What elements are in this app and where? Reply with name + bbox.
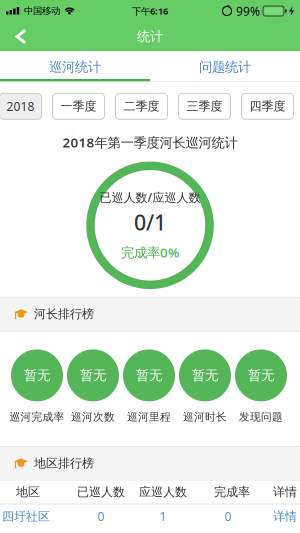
staticText: 1 xyxy=(159,508,166,524)
staticText: 暂无 xyxy=(136,367,162,384)
staticText: 完成率0% xyxy=(121,243,179,261)
staticText: 暂无 xyxy=(80,367,106,384)
staticText: 已巡人数/应巡人数 xyxy=(99,189,200,205)
staticText: 二季度 xyxy=(123,99,159,114)
staticText: 详情 xyxy=(273,509,297,524)
button[interactable]: Back xyxy=(0,23,27,50)
button[interactable]: 二季度 xyxy=(115,93,167,119)
button[interactable]: 2018 xyxy=(0,93,41,119)
staticText: 0 xyxy=(224,508,231,524)
staticText: 中国移动 xyxy=(24,5,60,17)
staticText: 河长排行榜 xyxy=(34,307,94,321)
staticText: 2018年第一季度河长巡河统计 xyxy=(62,133,237,151)
button[interactable]: 三季度 xyxy=(178,93,230,119)
staticText: 地区排行榜 xyxy=(34,456,94,471)
staticText: 统计 xyxy=(137,28,163,45)
staticText: 暂无 xyxy=(248,367,274,384)
staticText: 已巡人数 xyxy=(77,485,125,499)
staticText: 2018 xyxy=(6,98,34,114)
staticText: 巡河次数 xyxy=(71,410,115,423)
staticText: 暂无 xyxy=(192,367,218,384)
staticText: 四季度 xyxy=(249,99,285,114)
staticText: 99% xyxy=(236,3,260,19)
staticText: 四圩社区 xyxy=(2,509,50,524)
staticText: 三季度 xyxy=(186,99,222,114)
staticText: 一季度 xyxy=(60,99,96,114)
button[interactable]: 一季度 xyxy=(52,93,104,119)
staticText: 巡河时长 xyxy=(183,410,227,423)
staticText: 0 xyxy=(97,508,104,524)
staticText: 巡河完成率 xyxy=(9,410,64,423)
staticText: 巡河里程 xyxy=(127,410,171,423)
staticText: 应巡人数 xyxy=(139,485,187,499)
staticText: 0/1 xyxy=(134,208,166,236)
staticText: 地区 xyxy=(16,485,40,499)
staticText: 完成率 xyxy=(214,485,250,499)
button[interactable]: 四季度 xyxy=(241,93,293,119)
staticText: 下午6:16 xyxy=(132,5,168,17)
staticText: 详情 xyxy=(273,485,297,499)
button[interactable]: 问题统计 xyxy=(150,51,300,79)
staticText: 暂无 xyxy=(24,367,50,384)
staticText: 问题统计 xyxy=(199,59,251,75)
staticText: 发现问题 xyxy=(239,410,283,423)
button[interactable]: 巡河统计 xyxy=(0,51,150,79)
staticText: 巡河统计 xyxy=(49,59,101,75)
button[interactable]: 四圩社区 xyxy=(0,504,300,528)
